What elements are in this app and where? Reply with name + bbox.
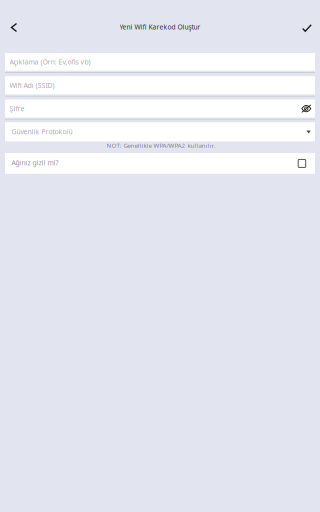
staticText: Yeni Wifi Karekod Oluştur (119, 22, 200, 32)
button[interactable]: Back (0, 10, 28, 42)
staticText: Güvenlik Protokolü (11, 127, 72, 136)
staticText: Açıklama (Örn: Ev,ofis vb) (10, 57, 91, 67)
button[interactable]: Güvenlik Protokolü (5, 122, 315, 142)
button[interactable]: Açıklama (Örn: Ev,ofis vb) (5, 53, 315, 71)
staticText: Ağınız gizli mi? (11, 158, 58, 167)
button[interactable]: Save (291, 11, 320, 42)
button[interactable]: Show password (301, 103, 315, 114)
button[interactable]: Wifi Adı (SSID) (5, 76, 315, 95)
staticText: Şifre (10, 104, 25, 113)
button[interactable]: Ağınız gizli mi? (5, 153, 315, 174)
button[interactable]: Şifre (5, 99, 315, 118)
staticText: NOT: Genellikle WPA/WPA2 kullanılır. (106, 141, 215, 150)
staticText: Wifi Adı (SSID) (10, 81, 55, 90)
button[interactable]: Hidden network (298, 155, 315, 171)
